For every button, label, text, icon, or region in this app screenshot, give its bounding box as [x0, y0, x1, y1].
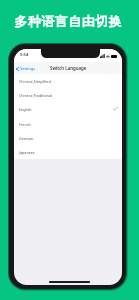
- button[interactable]: Japanese: [14, 145, 122, 159]
- staticText: German: [19, 136, 34, 141]
- staticText: 5:54: [20, 52, 29, 58]
- button[interactable]: English: [14, 102, 122, 117]
- other: Selected: [113, 107, 118, 110]
- staticText: English: [19, 107, 32, 112]
- staticText: Chinese,Traditional: [19, 93, 52, 98]
- button[interactable]: Chinese,Traditional: [14, 88, 122, 102]
- staticText: Japanese: [19, 150, 35, 155]
- staticText: French: [19, 122, 31, 127]
- staticText: Switch Language: [50, 65, 87, 71]
- button[interactable]: Settings: [14, 65, 38, 72]
- button[interactable]: German: [14, 131, 122, 145]
- staticText: 多种语言自由切换: [14, 13, 122, 29]
- button[interactable]: French: [14, 117, 122, 131]
- staticText: Chinese,Simplified: [19, 79, 51, 84]
- staticText: Settings: [20, 66, 36, 71]
- button[interactable]: Chinese,Simplified: [14, 74, 122, 88]
